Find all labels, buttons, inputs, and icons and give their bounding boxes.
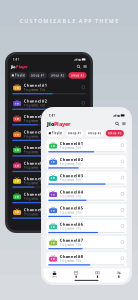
staticText: Programme Title bbox=[24, 104, 46, 107]
staticText: Channel #5 bbox=[24, 145, 47, 150]
staticText: Programme Title bbox=[60, 146, 82, 150]
staticText: Live TV bbox=[46, 225, 51, 227]
staticText: Programme Title bbox=[24, 150, 46, 154]
staticText: Programme Title bbox=[60, 243, 82, 247]
button[interactable]: Group #3 bbox=[68, 72, 87, 79]
staticText: Group #3 bbox=[70, 74, 84, 77]
button[interactable]: TV bbox=[10, 159, 87, 172]
staticText: TV bbox=[51, 225, 55, 229]
staticText: TV bbox=[15, 195, 19, 199]
button[interactable]: TV bbox=[10, 112, 87, 125]
button[interactable]: Group #1 bbox=[66, 130, 84, 136]
staticText: Playlist bbox=[52, 131, 62, 135]
staticText: TV bbox=[15, 211, 19, 214]
staticText: TV bbox=[51, 257, 55, 261]
button[interactable]: Search bbox=[115, 122, 119, 126]
button[interactable]: TV bbox=[46, 155, 126, 169]
button[interactable]: Menu bbox=[122, 122, 126, 126]
button[interactable]: TV bbox=[10, 97, 87, 110]
button[interactable]: TV bbox=[10, 143, 87, 157]
staticText: Programme Title bbox=[24, 166, 46, 169]
staticText: Programme Title bbox=[24, 119, 46, 123]
staticText: Player bbox=[54, 120, 71, 127]
button[interactable]: Menu bbox=[83, 65, 87, 69]
button[interactable]: Group #1 bbox=[29, 72, 47, 79]
staticText: Group #3 bbox=[108, 131, 122, 135]
staticText: Playlist bbox=[15, 74, 25, 77]
staticText: Programme Title bbox=[24, 135, 46, 138]
staticText: Channel #3 bbox=[60, 173, 83, 178]
staticText: Channel #7 bbox=[60, 238, 83, 243]
staticText: Channel #1 bbox=[60, 141, 83, 146]
staticText: TV bbox=[51, 160, 55, 164]
staticText: 9:41 bbox=[48, 114, 55, 117]
button[interactable]: Playlist bbox=[10, 72, 27, 79]
staticText: TV bbox=[51, 209, 55, 212]
staticText: TV bbox=[51, 144, 55, 148]
staticText: Channel #4 bbox=[24, 129, 47, 135]
staticText: Group #1 bbox=[68, 131, 82, 135]
staticText: Programme Title bbox=[60, 195, 82, 198]
button[interactable]: Guide bbox=[74, 271, 78, 278]
button[interactable]: Recordings bbox=[95, 271, 100, 278]
button[interactable]: TV bbox=[46, 171, 126, 186]
button[interactable]: Group #2 bbox=[48, 72, 67, 79]
staticText: Programme Title bbox=[60, 259, 82, 263]
staticText: Channel #6 bbox=[60, 221, 83, 227]
staticText: TV bbox=[15, 148, 19, 152]
button[interactable]: Settings bbox=[117, 271, 121, 278]
button[interactable]: TV bbox=[10, 174, 87, 188]
button[interactable]: TV bbox=[10, 81, 87, 94]
staticText: TV bbox=[51, 177, 55, 180]
staticText: Programme Title bbox=[60, 178, 82, 182]
staticText: Channel #2 bbox=[60, 157, 83, 162]
staticText: TV bbox=[51, 241, 55, 245]
staticText: Programme Title bbox=[24, 88, 46, 92]
button[interactable]: TV bbox=[46, 220, 126, 234]
button[interactable]: Group #3 bbox=[106, 130, 124, 136]
staticText: Channel #7 bbox=[24, 176, 47, 181]
button[interactable]: JioPlayer bbox=[11, 64, 28, 69]
staticText: Jio bbox=[47, 120, 54, 127]
staticText: Channel #6 bbox=[24, 160, 47, 166]
button[interactable]: Live TV bbox=[52, 271, 57, 278]
staticText: Channel #8 bbox=[24, 191, 47, 197]
staticText: TV bbox=[15, 180, 19, 183]
button[interactable]: TV bbox=[46, 204, 126, 218]
staticText: Group #1 bbox=[31, 74, 45, 77]
staticText: Channel #5 bbox=[60, 205, 83, 211]
button[interactable]: JioPlayer bbox=[47, 120, 71, 127]
staticText: Programme Title bbox=[24, 181, 46, 185]
button[interactable]: TV bbox=[46, 252, 126, 266]
staticText: CUSTOMIZABLE APP THEME bbox=[20, 17, 118, 25]
button[interactable]: TV bbox=[46, 139, 126, 153]
staticText: Programme Title bbox=[60, 227, 82, 230]
button[interactable]: TV bbox=[10, 190, 87, 203]
button[interactable]: TV bbox=[10, 128, 87, 141]
staticText: Programme Title bbox=[24, 213, 46, 216]
staticText: Channel #8 bbox=[60, 254, 83, 259]
button[interactable]: Playlist bbox=[47, 130, 64, 136]
staticText: TV bbox=[15, 133, 19, 136]
staticText: TV bbox=[15, 117, 19, 121]
staticText: Live TV bbox=[52, 276, 57, 278]
button[interactable]: TV bbox=[46, 188, 126, 202]
staticText: Player bbox=[16, 64, 28, 69]
button[interactable]: Group #2 bbox=[86, 130, 104, 136]
staticText: Channel #3 bbox=[24, 114, 47, 119]
staticText: Jio bbox=[11, 64, 16, 69]
staticText: Channel #9 bbox=[24, 207, 47, 212]
button[interactable]: TV bbox=[46, 236, 126, 250]
staticText: Programme Title bbox=[60, 162, 82, 166]
staticText: Programme Title bbox=[60, 211, 82, 214]
staticText: Programme Title bbox=[24, 197, 46, 200]
staticText: TV bbox=[15, 164, 19, 167]
button[interactable]: Search bbox=[77, 65, 81, 69]
staticText: TV bbox=[15, 102, 19, 105]
button[interactable]: TV bbox=[10, 205, 87, 219]
staticText: Channel #2 bbox=[24, 98, 47, 103]
staticText: Channel #1 bbox=[24, 83, 47, 88]
staticText: Group #2 bbox=[88, 131, 102, 135]
staticText: Group #2 bbox=[51, 74, 65, 77]
staticText: Channel #4 bbox=[60, 189, 83, 194]
